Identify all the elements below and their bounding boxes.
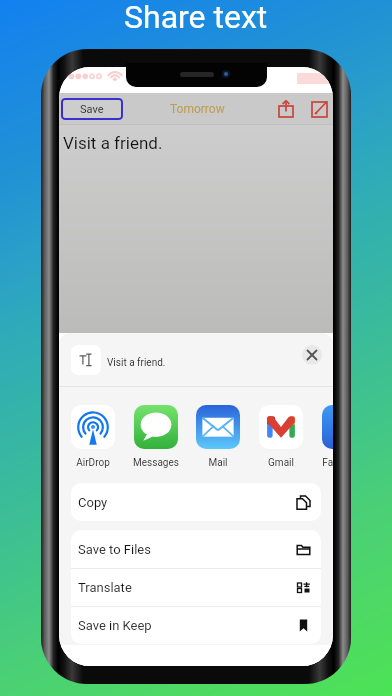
button[interactable]: Messages	[125, 405, 187, 470]
staticText: Save to Files	[78, 542, 151, 557]
button[interactable]: Save to Files	[71, 530, 321, 568]
staticText: Save in Keep	[78, 618, 152, 633]
button[interactable]: Share	[275, 98, 297, 120]
staticText: Share text	[124, 0, 268, 36]
staticText: Gmail	[268, 457, 294, 469]
staticText: AirDrop	[76, 457, 110, 469]
button[interactable]: Translate	[71, 569, 321, 606]
staticText: Translate	[78, 580, 132, 595]
button[interactable]: Gmail	[250, 405, 312, 470]
staticText: Tomorrow	[170, 102, 225, 116]
button[interactable]: Close	[302, 345, 322, 365]
button[interactable]: AirDrop	[62, 405, 124, 470]
staticText: Visit a friend.	[63, 133, 163, 153]
button[interactable]: Facebook	[313, 405, 333, 470]
button[interactable]: Save in Keep	[71, 607, 321, 644]
button[interactable]: Mail	[187, 405, 249, 470]
button[interactable]: Compose	[309, 98, 331, 120]
button[interactable]: Visit a friend.	[59, 333, 333, 386]
staticText: Visit a friend.	[107, 357, 166, 369]
staticText: Copy	[78, 495, 108, 510]
staticText: Save	[80, 103, 104, 116]
button[interactable]: Copy	[71, 483, 321, 521]
staticText: Messages	[133, 457, 179, 469]
button[interactable]: Save	[61, 98, 123, 120]
staticText: Facebook	[322, 457, 333, 469]
staticText: Mail	[208, 457, 228, 469]
